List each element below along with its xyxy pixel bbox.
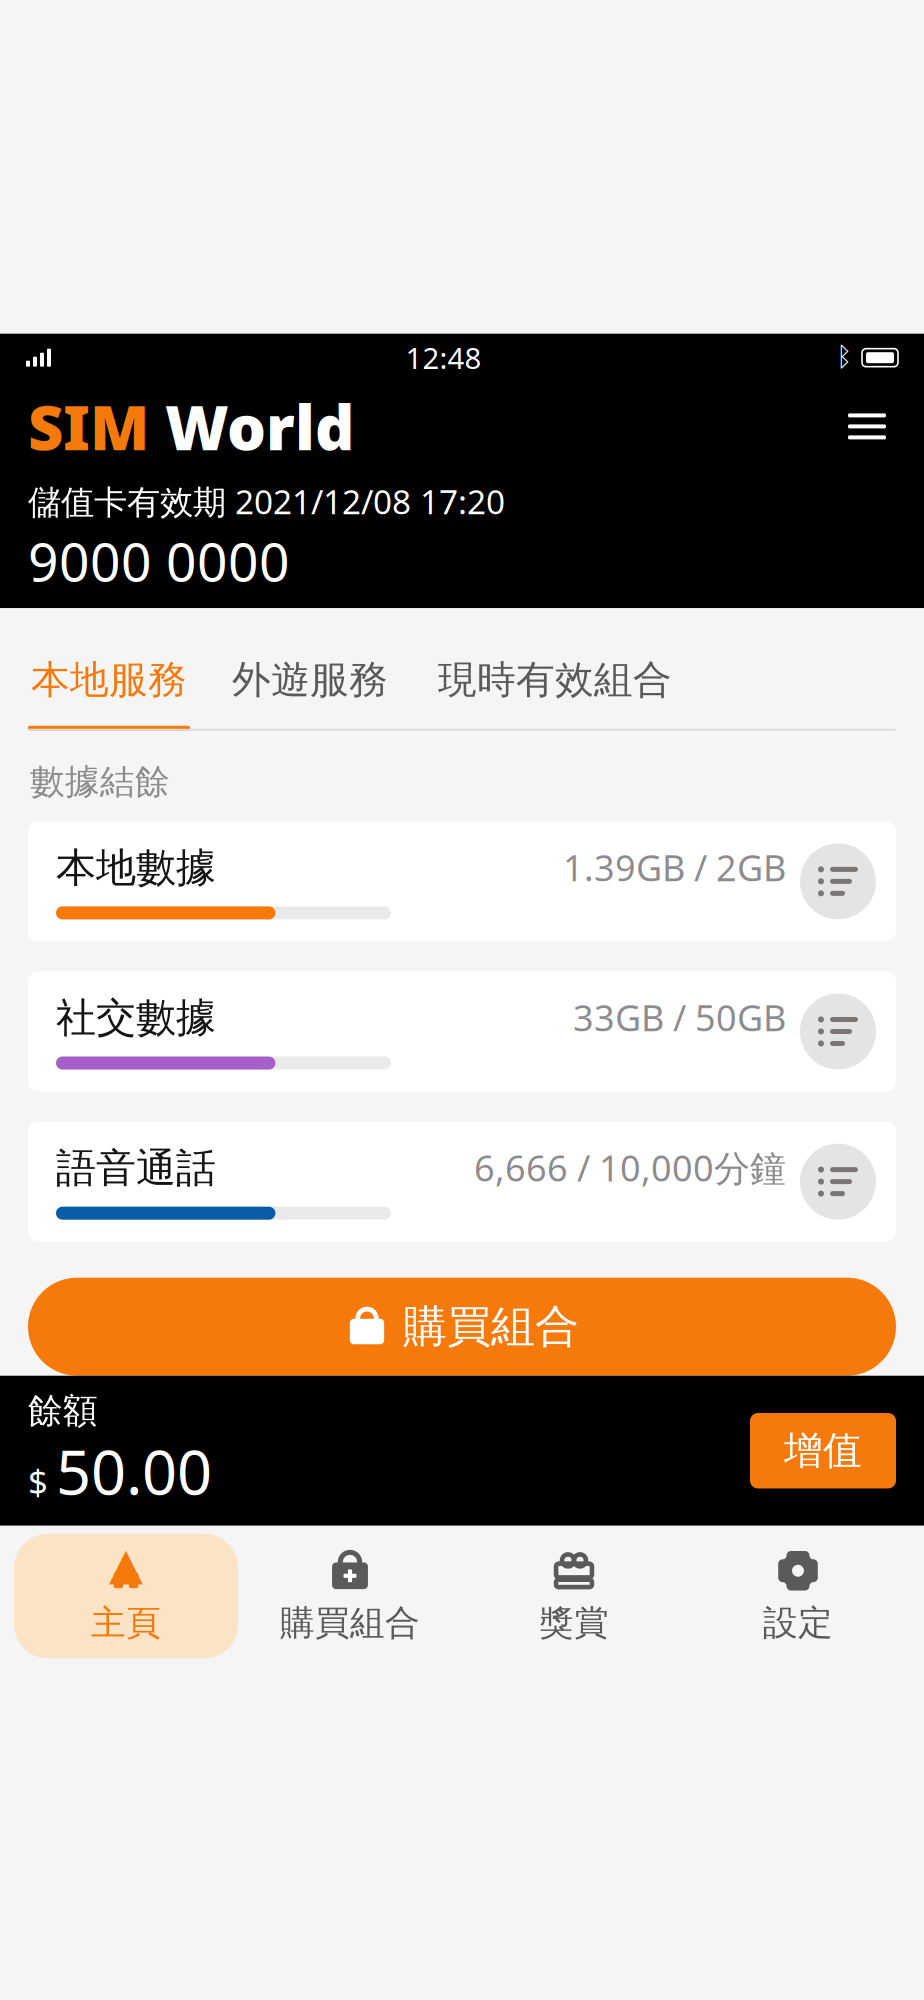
staticText: 設定 (763, 1602, 833, 1644)
button[interactable]: 購買組合 (238, 1534, 462, 1658)
staticText: 1.39GB / 2GB (563, 843, 786, 891)
staticText: 50.00 (56, 1430, 212, 1512)
staticText: 社交數據 (56, 993, 216, 1042)
button[interactable]: Menu (838, 403, 896, 449)
staticText: 外遊服務 (232, 656, 388, 704)
button[interactable]: 增值 (750, 1413, 896, 1488)
button[interactable]: 獎賞 (462, 1534, 686, 1658)
staticText: World (149, 386, 354, 467)
staticText: 6,666 / 10,000分鐘 (474, 1144, 786, 1191)
staticText: 獎賞 (539, 1602, 609, 1644)
button[interactable]: ▲ (14, 1534, 238, 1658)
staticText: SIM (28, 386, 149, 467)
staticText: 現時有效組合 (438, 656, 672, 704)
staticText: $ (28, 1458, 48, 1504)
staticText: 本地數據 (56, 843, 216, 892)
staticText: 餘額 (28, 1390, 98, 1432)
staticText: 語音通話 (56, 1143, 216, 1193)
button[interactable]: 外遊服務 (232, 656, 388, 704)
button[interactable]: 現時有效組合 (438, 656, 672, 704)
staticText: 購買組合 (403, 1300, 579, 1354)
staticText: 增值 (784, 1427, 862, 1474)
button[interactable]: 設定 (686, 1534, 910, 1658)
staticText: 9000 0000 (28, 525, 290, 596)
staticText: 33GB / 50GB (573, 993, 786, 1041)
button[interactable]: 本地服務 (31, 656, 187, 704)
staticText: 數據結餘 (30, 761, 170, 803)
staticText: 主頁 (91, 1602, 161, 1644)
staticText: ▲ (109, 1539, 143, 1589)
button[interactable]: 購買組合 (28, 1278, 896, 1376)
button[interactable]: 本地數據 (28, 821, 896, 941)
staticText: 12:48 (405, 338, 481, 377)
button[interactable]: 語音通話 (28, 1121, 896, 1242)
staticText: 購買組合 (280, 1602, 420, 1644)
staticText: ᛒ (836, 345, 852, 371)
button[interactable]: 社交數據 (28, 971, 896, 1091)
staticText: 本地服務 (31, 656, 187, 704)
staticText: 儲值卡有效期 2021/12/08 17:20 (28, 479, 505, 523)
